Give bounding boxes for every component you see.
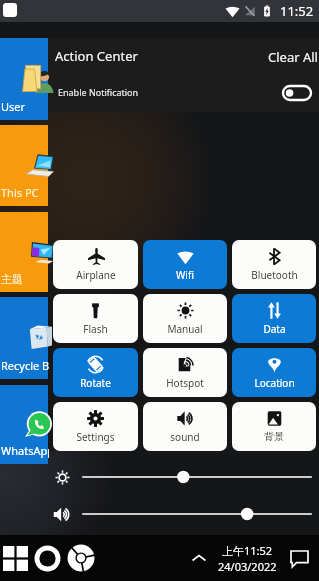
button[interactable]: Volume	[83, 504, 311, 524]
button[interactable]: 主题	[0, 212, 48, 292]
button[interactable]: Location	[232, 348, 316, 397]
staticText: Rotate	[80, 376, 111, 390]
staticText: 上午11:52	[222, 543, 273, 558]
button[interactable]: sound	[143, 402, 227, 451]
staticText: Flash	[83, 322, 108, 336]
button[interactable]: User	[0, 38, 48, 120]
staticText: Wifi	[176, 268, 194, 282]
staticText: Hotspot	[166, 376, 204, 390]
button[interactable]: Enable notification toggle	[283, 86, 311, 100]
button[interactable]: Bluetooth	[232, 240, 316, 289]
staticText: sound	[170, 430, 200, 444]
button[interactable]: 上午11:52	[213, 543, 282, 574]
staticText: 24/03/2022	[218, 559, 277, 574]
button[interactable]: Wifi	[143, 240, 227, 289]
button[interactable]: Clear All	[264, 44, 319, 70]
staticText: 主题	[1, 272, 23, 286]
staticText: 背景	[264, 430, 284, 443]
button[interactable]: This PC	[0, 125, 48, 206]
button[interactable]: Show hidden icons	[185, 535, 213, 581]
staticText: WhatsApp	[1, 443, 49, 458]
button[interactable]: Flash	[53, 294, 138, 343]
staticText: Bluetooth	[251, 268, 298, 282]
button[interactable]: 背景	[232, 402, 316, 451]
staticText: Location	[254, 376, 295, 390]
button[interactable]: Chrome	[64, 535, 97, 581]
button[interactable]: Rotate	[53, 348, 138, 397]
button[interactable]: Settings	[53, 402, 138, 451]
button[interactable]: Manual	[143, 294, 227, 343]
staticText: 11:52	[280, 2, 314, 20]
staticText: Action Center	[55, 47, 138, 65]
button[interactable]: Cortana	[31, 535, 64, 581]
staticText: This PC	[1, 185, 39, 200]
staticText: Data	[263, 322, 286, 336]
button[interactable]: Notifications	[282, 535, 316, 581]
button[interactable]: Airplane	[53, 240, 138, 289]
button[interactable]: Data	[232, 294, 316, 343]
button[interactable]: Start	[0, 535, 31, 581]
button[interactable]: Recycle Bin	[0, 297, 48, 379]
staticText: Enable Notification	[58, 86, 139, 98]
staticText: Airplane	[76, 268, 116, 282]
staticText: Recycle Bin	[1, 358, 49, 373]
staticText: User	[1, 99, 26, 114]
button[interactable]: Brightness	[83, 467, 311, 487]
button[interactable]: Hotspot	[143, 348, 227, 397]
staticText: Settings	[76, 430, 115, 444]
button[interactable]: WhatsApp	[0, 385, 48, 464]
staticText: Manual	[167, 322, 203, 336]
staticText: Clear All	[268, 48, 318, 66]
